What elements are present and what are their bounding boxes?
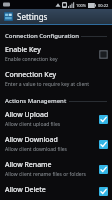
button[interactable]: Checked <box>99 115 108 124</box>
button[interactable]: Settings <box>0 9 112 24</box>
staticText: Connection Key <box>5 70 57 80</box>
staticText: Enable connection key <box>5 56 58 63</box>
staticText: Allow Download <box>5 135 58 145</box>
staticText: Allow Upload <box>5 110 49 120</box>
staticText: Allow client upload files <box>5 121 61 128</box>
staticText: Actions Management <box>5 97 67 105</box>
staticText: Settings <box>17 11 48 22</box>
staticText: 00:22 <box>98 3 109 8</box>
button[interactable]: Connection Key <box>0 66 112 91</box>
staticText: Allow Rename <box>5 160 52 170</box>
button[interactable]: Allow Delete <box>0 181 112 200</box>
button[interactable]: Allow Download <box>0 131 112 156</box>
staticText: Enable Key <box>5 45 41 55</box>
staticText: Enter a value to require key at client <box>5 81 90 88</box>
button[interactable]: Enable Key <box>0 41 112 66</box>
button[interactable]: Checked <box>99 165 108 174</box>
button[interactable]: Unchecked <box>99 50 108 59</box>
staticText: Connection Configuration <box>5 32 79 40</box>
staticText: 100% <box>76 3 87 8</box>
button[interactable]: Allow Upload <box>0 106 112 131</box>
staticText: Allow client rename files or folders <box>5 171 86 178</box>
button[interactable]: Checked <box>99 187 108 196</box>
staticText: Allow Delete <box>5 185 46 195</box>
staticText: Allow client download files <box>5 146 67 153</box>
button[interactable]: Allow Rename <box>0 156 112 181</box>
button[interactable]: Checked <box>99 140 108 149</box>
